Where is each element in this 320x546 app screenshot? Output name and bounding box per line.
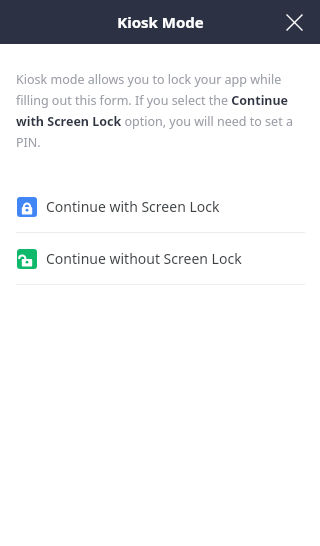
staticText: Continue without Screen Lock	[46, 249, 242, 268]
staticText: Kiosk mode allows you to lock your app w…	[16, 71, 307, 151]
staticText: Continue with Screen Lock	[46, 197, 220, 216]
button[interactable]: Continue with Screen Lock	[0, 181, 320, 232]
button[interactable]: Continue without Screen Lock	[0, 233, 320, 284]
staticText: Kiosk Mode	[117, 12, 204, 32]
button[interactable]: Close	[276, 4, 312, 40]
